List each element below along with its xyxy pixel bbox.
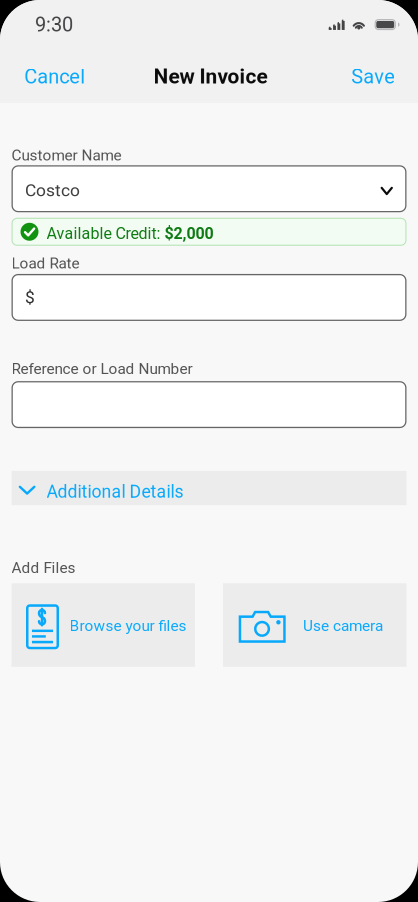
button[interactable]: Costco: [11, 165, 406, 212]
button[interactable]: Cancel: [0, 54, 97, 97]
staticText: New Invoice: [153, 64, 267, 89]
staticText: $2,000: [164, 224, 213, 243]
staticText: Reference or Load Number: [11, 360, 192, 378]
button[interactable]: Browse your files: [11, 583, 195, 667]
button[interactable]: Additional Details: [11, 471, 406, 505]
button[interactable]: Save: [339, 54, 418, 97]
staticText: $: [25, 287, 35, 308]
staticText: 9:30: [35, 13, 73, 36]
button[interactable]: Use camera: [223, 583, 406, 667]
staticText: Browse your files: [69, 617, 186, 635]
staticText: Load Rate: [11, 254, 79, 272]
staticText: Costco: [25, 180, 80, 200]
staticText: Available Credit:: [46, 224, 164, 243]
staticText: Use camera: [303, 617, 383, 635]
staticText: Add Files: [11, 559, 75, 577]
staticText: Save: [351, 65, 395, 88]
staticText: Additional Details: [46, 481, 183, 502]
staticText: Cancel: [24, 65, 85, 88]
staticText: Customer Name: [11, 146, 121, 164]
